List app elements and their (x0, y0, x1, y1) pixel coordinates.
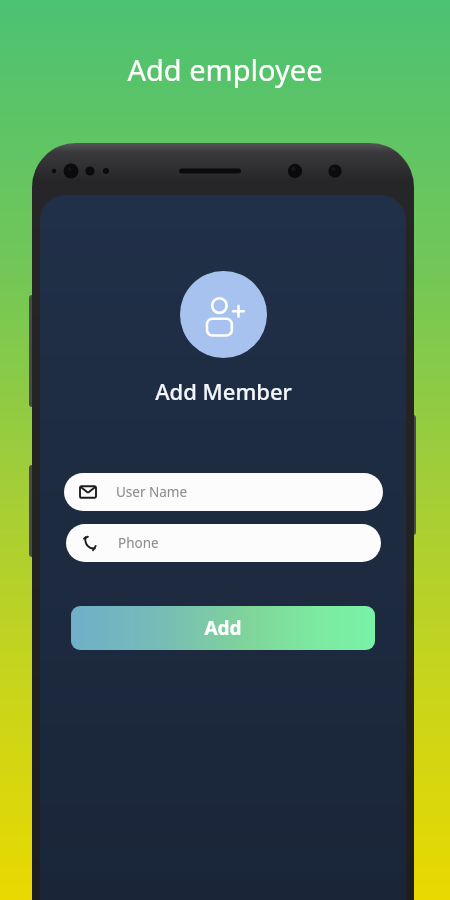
button[interactable]: Add member avatar (180, 271, 267, 358)
staticText: Add (204, 615, 242, 641)
staticText: Add employee (0, 50, 450, 89)
button[interactable]: Add (71, 606, 375, 650)
staticText: Add Member (155, 376, 292, 406)
staticText: Phone (118, 534, 159, 552)
staticText: User Name (116, 483, 188, 501)
button[interactable]: Phone (66, 524, 381, 562)
button[interactable]: User Name (64, 473, 383, 511)
